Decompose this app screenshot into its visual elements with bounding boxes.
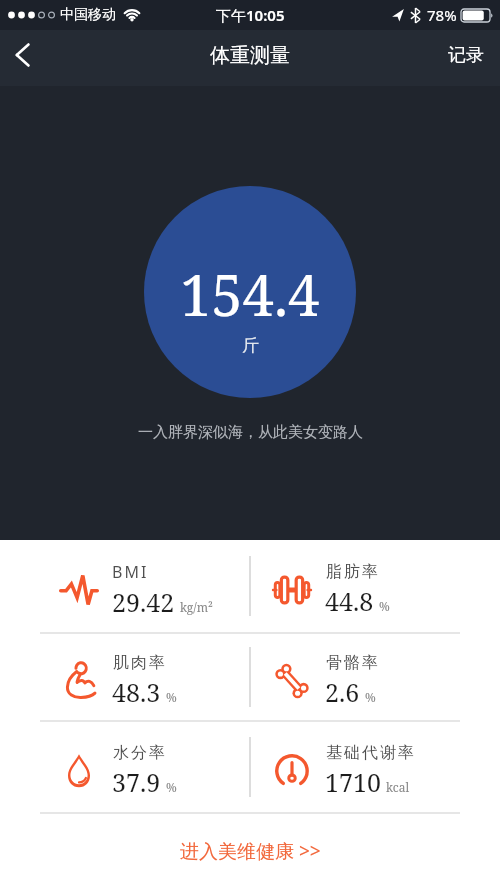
staticText: 29.42 (112, 585, 175, 619)
staticText: % (379, 598, 390, 614)
staticText: % (365, 689, 376, 705)
button[interactable]: BMI (0, 540, 249, 632)
staticText: 78% (427, 5, 457, 25)
staticText: 一入胖界深似海，从此美女变路人 (138, 423, 363, 442)
button[interactable]: 肌肉率 (0, 634, 249, 720)
button[interactable] (0, 33, 44, 77)
button[interactable]: 脂肪率 (251, 540, 500, 632)
staticText: 脂肪率 (325, 562, 379, 582)
staticText: 44.8 (325, 584, 374, 618)
staticText: 基础代谢率 (325, 743, 415, 763)
staticText: BMI (112, 561, 149, 583)
staticText: 水分率 (112, 743, 166, 763)
staticText: % (166, 779, 177, 795)
staticText: 中国移动 (60, 6, 116, 24)
staticText: 肌肉率 (112, 653, 166, 673)
staticText: % (166, 689, 177, 705)
staticText: 2.6 (325, 675, 360, 709)
button[interactable]: 记录 (432, 32, 500, 79)
staticText: 48.3 (112, 675, 161, 709)
staticText: 进入美维健康 >> (180, 838, 321, 864)
staticText: 37.9 (112, 765, 161, 799)
button[interactable]: 骨骼率 (251, 634, 500, 720)
staticText: kcal (386, 779, 410, 795)
staticText: 记录 (448, 44, 484, 67)
staticText: kg/m² (180, 599, 213, 615)
staticText: 下午10:05 (216, 5, 285, 25)
button[interactable]: 水分率 (0, 722, 249, 812)
staticText: 斤 (242, 335, 259, 356)
staticText: 体重测量 (210, 43, 290, 68)
staticText: 154.4 (180, 256, 320, 332)
staticText: 1710 (325, 765, 381, 799)
staticText: 骨骼率 (325, 653, 379, 673)
button[interactable]: 进入美维健康 >> (166, 830, 335, 872)
button[interactable]: 基础代谢率 (251, 722, 500, 812)
